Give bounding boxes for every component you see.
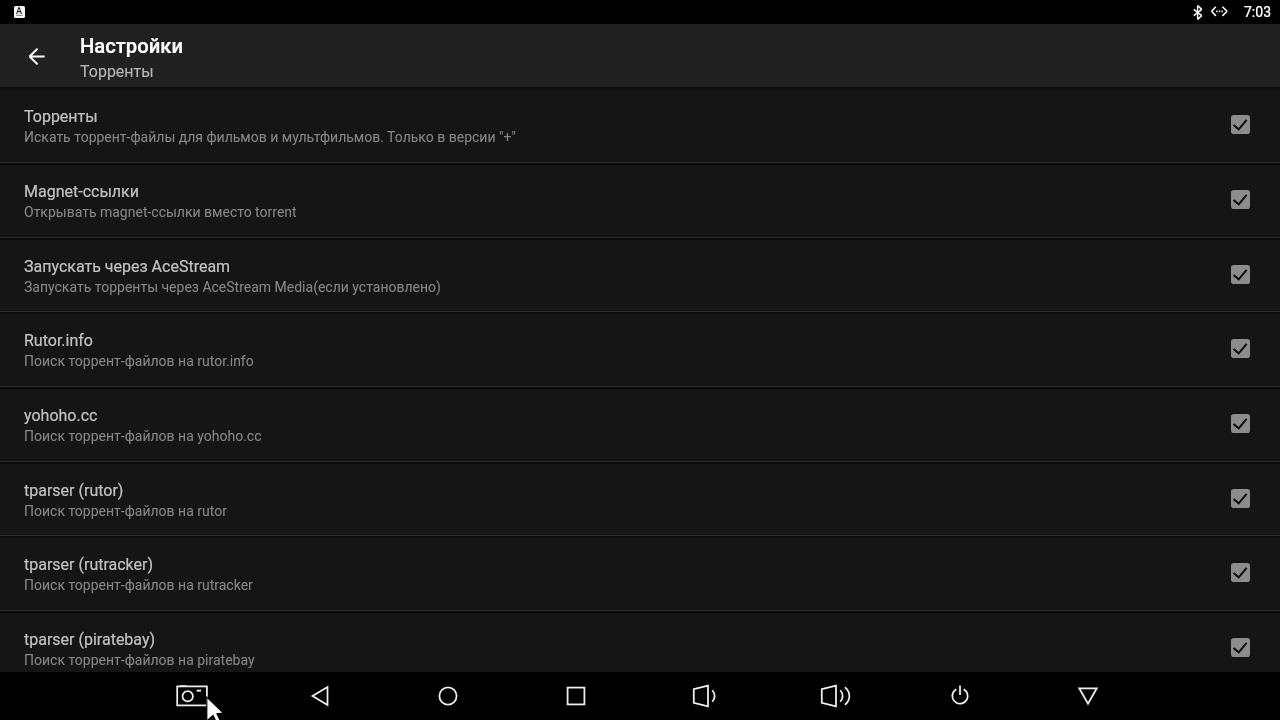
button[interactable]: Включено [1216, 535, 1264, 610]
button[interactable]: Включено [1216, 311, 1264, 386]
button[interactable]: tparser (piratebay) [0, 610, 1280, 685]
button[interactable]: tparser (rutracker) [0, 535, 1280, 610]
staticText: Magnet-ссылки [24, 182, 139, 201]
button[interactable]: Включено [1216, 461, 1264, 536]
staticText: Запускать торренты через AceStream Media… [24, 279, 441, 295]
staticText: Rutor.info [24, 331, 93, 350]
staticText: Настройки [80, 34, 184, 58]
staticText: Торренты [24, 107, 98, 126]
button[interactable]: Включено [1216, 610, 1264, 685]
button[interactable]: Magnet-ссылки [0, 162, 1280, 237]
button[interactable]: yohoho.cc [0, 386, 1280, 461]
button[interactable]: tparser (rutor) [0, 461, 1280, 536]
button[interactable]: Главный экран [408, 672, 488, 720]
staticText: Поиск торрент-файлов на rutor.info [24, 353, 254, 369]
button[interactable]: Громче [792, 672, 872, 720]
staticText: Торренты [80, 62, 154, 81]
staticText: Запускать через AceStream [24, 257, 231, 276]
staticText: tparser (piratebay) [24, 630, 156, 649]
button[interactable]: Включено [1216, 237, 1264, 312]
staticText: Поиск торрент-файлов на piratebay [24, 652, 255, 668]
button[interactable]: Снимок экрана [152, 672, 232, 720]
button[interactable]: Недавние [536, 672, 616, 720]
staticText: Открывать magnet-ссылки вместо torrent [24, 204, 297, 220]
button[interactable]: Торренты [0, 87, 1280, 162]
button[interactable]: Скрыть панель [1048, 672, 1128, 720]
staticText: tparser (rutracker) [24, 555, 154, 574]
button[interactable]: Rutor.info [0, 311, 1280, 386]
button[interactable]: Включено [1216, 162, 1264, 237]
staticText: Поиск торрент-файлов на yohoho.cc [24, 428, 262, 444]
staticText: Поиск торрент-файлов на rutracker [24, 577, 253, 593]
button[interactable]: Питание [920, 672, 1000, 720]
staticText: A [16, 6, 23, 17]
staticText: Искать торрент-файлы для фильмов и мульт… [24, 129, 516, 145]
button[interactable]: Включено [1216, 87, 1264, 162]
button[interactable]: Включено [1216, 386, 1264, 461]
staticText: 7:03 [1244, 4, 1271, 20]
button[interactable]: Назад [13, 32, 61, 80]
staticText: yohoho.cc [24, 406, 98, 425]
staticText: Поиск торрент-файлов на rutor [24, 503, 227, 519]
button[interactable]: Назад [280, 672, 360, 720]
staticText: tparser (rutor) [24, 481, 124, 500]
button[interactable]: Запускать через AceStream [0, 237, 1280, 312]
button[interactable]: Тише [664, 672, 744, 720]
